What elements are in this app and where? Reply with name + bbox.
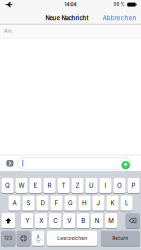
button[interactable]: Apps einblenden (6, 160, 13, 167)
button[interactable]: G (64, 195, 77, 211)
staticText: M (108, 217, 114, 224)
button[interactable]: M (105, 213, 117, 229)
staticText: P (131, 182, 135, 189)
staticText: Neue (46, 14, 60, 22)
button[interactable]: C (49, 213, 61, 229)
staticText: G (68, 199, 73, 207)
button[interactable]: L (120, 195, 133, 211)
button[interactable]: J (92, 195, 105, 211)
button[interactable]: B (77, 213, 89, 229)
button[interactable]: Diktieren (32, 230, 44, 246)
staticText: O (117, 182, 122, 189)
staticText: W (18, 182, 24, 189)
button[interactable]: Senden (121, 161, 130, 169)
button[interactable]: Nächste Tastatur (17, 230, 30, 246)
staticText: Abbrechen (102, 14, 136, 22)
button[interactable]: H (78, 195, 91, 211)
staticText: S (26, 199, 30, 207)
button[interactable]: Return (101, 230, 140, 246)
staticText: K (110, 199, 114, 207)
staticText: 14:04 (64, 2, 76, 7)
button[interactable]: Y (21, 213, 33, 229)
staticText: B (81, 217, 85, 224)
staticText: E (33, 182, 37, 189)
button[interactable]: Löschen (126, 213, 140, 229)
staticText: R (47, 182, 51, 189)
staticText: Leerzeichen (57, 235, 87, 241)
button[interactable]: E (29, 177, 42, 193)
staticText: An: (4, 28, 13, 34)
staticText: J (96, 199, 100, 207)
button[interactable]: R (43, 177, 56, 193)
staticText: 123 (4, 236, 12, 241)
staticText: N (95, 217, 100, 224)
staticText: U (89, 182, 94, 189)
button[interactable]: O (113, 177, 126, 193)
staticText: X (39, 217, 43, 224)
staticText: H (82, 199, 87, 207)
button[interactable]: S (22, 195, 35, 211)
button[interactable]: P (127, 177, 140, 193)
button[interactable]: Q (1, 177, 14, 193)
button[interactable]: Leerzeichen (47, 230, 97, 246)
button[interactable]: X (35, 213, 47, 229)
staticText: C (53, 217, 57, 224)
button[interactable]: Umschalttaste (1, 213, 15, 229)
staticText: I (104, 182, 106, 189)
button[interactable]: A (8, 195, 21, 211)
button[interactable]: W (15, 177, 28, 193)
staticText: Nachricht (61, 14, 88, 22)
staticText: D (40, 199, 44, 207)
button[interactable]: Z (71, 177, 84, 193)
button[interactable]: N (91, 213, 103, 229)
button[interactable]: V (63, 213, 75, 229)
button[interactable]: F (50, 195, 63, 211)
staticText: L (125, 199, 128, 207)
staticText: Y (25, 217, 29, 224)
staticText: Z (75, 182, 79, 189)
button[interactable]: I (99, 177, 112, 193)
staticText: T (61, 182, 65, 189)
button[interactable]: Abbrechen (102, 14, 136, 22)
button[interactable]: 123 (1, 230, 15, 246)
staticText: F (54, 199, 58, 207)
staticText: 98 % (113, 2, 124, 7)
button[interactable]: K (106, 195, 119, 211)
button[interactable]: U (85, 177, 98, 193)
staticText: V (67, 217, 71, 224)
button[interactable]: T (57, 177, 70, 193)
button[interactable]: D (36, 195, 49, 211)
staticText: Return (112, 235, 128, 241)
staticText: Q (5, 182, 10, 189)
staticText: A (12, 199, 16, 207)
